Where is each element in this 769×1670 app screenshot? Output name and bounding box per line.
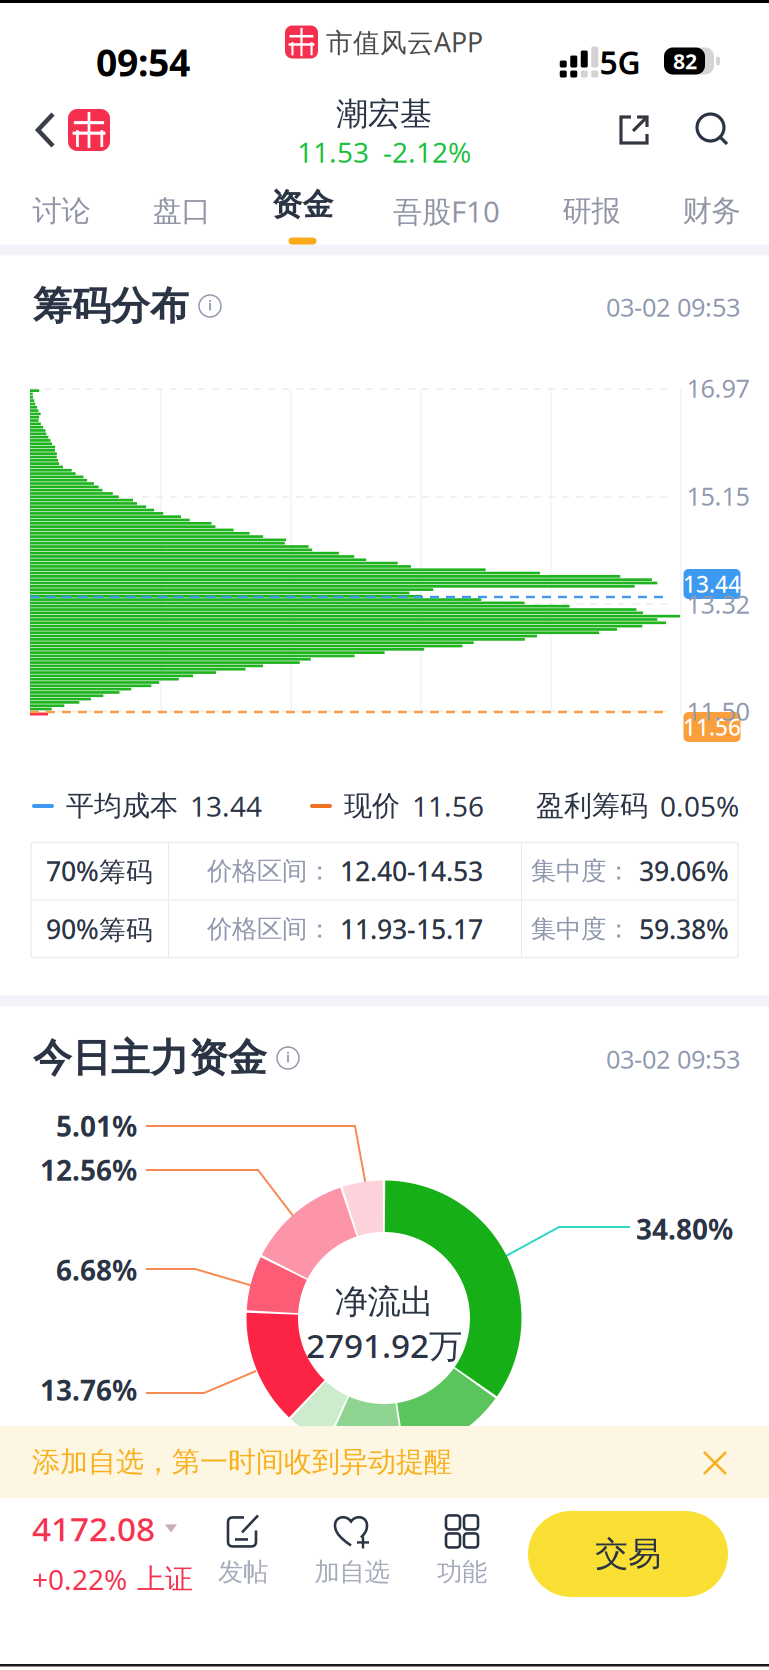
staticText: 82 <box>673 47 697 75</box>
staticText: 潮宏基 <box>336 94 432 134</box>
button[interactable]: Share <box>606 102 662 158</box>
staticText: 加自选 <box>314 1556 389 1587</box>
staticText: 财务 <box>682 193 740 229</box>
staticText: 11.56 <box>683 712 741 742</box>
button[interactable]: 4172.08 <box>32 1497 222 1607</box>
staticText: +0.22% <box>32 1560 127 1598</box>
staticText: 0.05% <box>660 787 739 825</box>
staticText: 11.93-15.17 <box>340 911 483 947</box>
button[interactable]: 资金 <box>247 186 357 232</box>
staticText: 吾股F10 <box>393 191 500 230</box>
staticText: 平均成本 <box>66 789 178 823</box>
staticText: -2.12% <box>383 133 471 171</box>
button[interactable]: 财务 <box>656 181 766 241</box>
button[interactable]: Back <box>17 100 127 160</box>
staticText: 今日主力资金 <box>33 1034 267 1082</box>
staticText: 集中度： <box>531 855 631 886</box>
staticText: 发帖 <box>218 1556 268 1587</box>
staticText: 13.76% <box>40 1371 137 1409</box>
button[interactable]: 盘口 <box>126 181 236 241</box>
staticText: 13.32 <box>686 587 749 621</box>
staticText: 功能 <box>437 1556 487 1587</box>
staticText: 价格区间： <box>207 855 332 886</box>
staticText: 4172.08 <box>32 1506 155 1551</box>
staticText: 价格区间： <box>207 913 332 944</box>
staticText: 盘口 <box>152 193 210 229</box>
staticText: 59.38% <box>639 911 729 947</box>
staticText: 34.80% <box>636 1210 733 1248</box>
staticText: 5.01% <box>56 1107 137 1145</box>
staticText: 12.56% <box>40 1151 137 1189</box>
staticText: 上证 <box>137 1562 193 1596</box>
staticText: 12.40-14.53 <box>340 853 483 889</box>
staticText: 70%筹码 <box>46 853 153 889</box>
staticText: 盈利筹码 <box>536 789 648 823</box>
staticText: 03-02 09:53 <box>606 1042 740 1076</box>
button[interactable]: 发帖 <box>193 1505 293 1595</box>
button[interactable]: 交易 <box>528 1511 728 1597</box>
button[interactable]: Search <box>685 102 741 158</box>
staticText: 13.44 <box>683 569 741 599</box>
button[interactable]: 功能 <box>412 1505 512 1595</box>
staticText: 筹码分布 <box>33 282 189 330</box>
staticText: 39.06% <box>639 853 729 889</box>
staticText: 现价 <box>344 789 400 823</box>
staticText: 2791.92万 <box>306 1323 462 1367</box>
staticText: 集中度： <box>531 913 631 944</box>
staticText: 11.56 <box>412 787 484 825</box>
button[interactable]: 加自选 <box>302 1505 402 1595</box>
button[interactable]: 研报 <box>536 181 646 241</box>
staticText: 13.44 <box>190 787 262 825</box>
staticText: 16.97 <box>686 371 749 405</box>
staticText: 6.68% <box>56 1251 137 1289</box>
button[interactable]: 讨论 <box>6 181 116 241</box>
staticText: 90%筹码 <box>46 911 153 947</box>
staticText: 11.53 <box>297 133 369 171</box>
staticText: 添加自选，第一时间收到异动提醒 <box>32 1445 452 1479</box>
staticText: 09:54 <box>96 37 190 87</box>
staticText: 5G <box>599 41 640 83</box>
staticText: 研报 <box>562 193 620 229</box>
staticText: 交易 <box>595 1533 661 1574</box>
staticText: 15.15 <box>686 479 749 513</box>
staticText: 净流出 <box>334 1281 433 1322</box>
staticText: 资金 <box>271 186 333 224</box>
staticText: 讨论 <box>32 193 90 229</box>
staticText: 11.50 <box>686 694 749 728</box>
button[interactable]: Close <box>687 1435 743 1491</box>
staticText: 市值风云APP <box>326 24 483 60</box>
button[interactable]: 吾股F10 <box>376 181 516 241</box>
staticText: 03-02 09:53 <box>606 290 740 324</box>
